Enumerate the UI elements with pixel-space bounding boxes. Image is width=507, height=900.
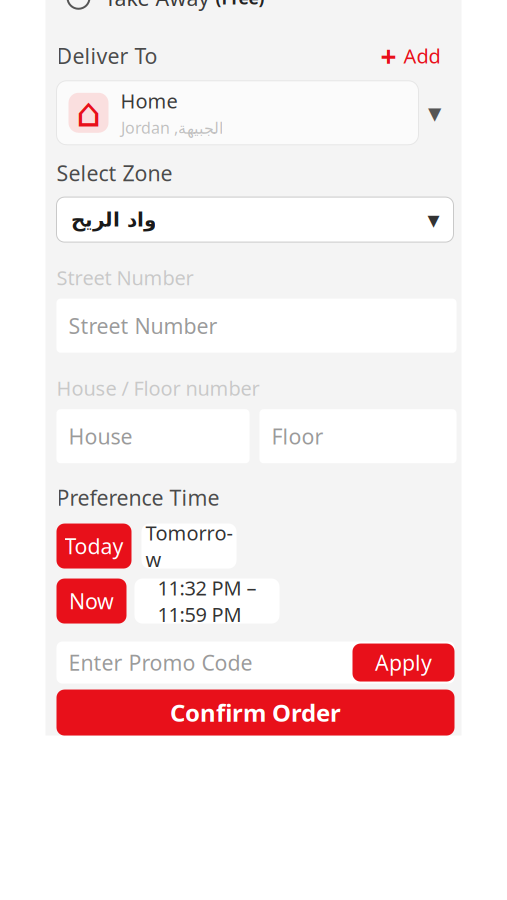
staticText: Enter Promo Code xyxy=(68,648,252,677)
staticText: Apply xyxy=(375,648,432,677)
staticText: Select Zone xyxy=(56,159,172,187)
button[interactable]: Take Away xyxy=(56,0,450,15)
staticText: ⌂ xyxy=(76,90,101,135)
staticText: Tomorrow xyxy=(145,519,232,573)
button[interactable]: واد الريح xyxy=(56,197,453,242)
button[interactable]: Apply xyxy=(352,644,454,682)
button[interactable]: Confirm Order xyxy=(56,690,454,736)
button[interactable]: Street Number xyxy=(56,299,456,353)
staticText: House / Floor number xyxy=(56,375,259,401)
staticText: Add xyxy=(403,42,440,69)
staticText: Take Away xyxy=(104,0,209,12)
staticText: Home xyxy=(120,87,177,114)
button[interactable]: ⌂ xyxy=(56,81,418,145)
staticText: 11:32 PM – 11:59 PM xyxy=(157,574,256,628)
staticText: Street Number xyxy=(68,311,217,340)
button[interactable]: Today xyxy=(56,524,131,569)
staticText: Preference Time xyxy=(56,483,219,511)
staticText: House xyxy=(68,422,132,450)
button[interactable]: House xyxy=(56,409,249,463)
staticText: Confirm Order xyxy=(170,697,341,728)
staticText: (Free) xyxy=(215,0,264,9)
staticText: + xyxy=(380,37,396,74)
staticText: Street Number xyxy=(56,264,193,291)
button[interactable]: Tomorrow xyxy=(141,524,236,569)
staticText: Today xyxy=(64,532,123,560)
button[interactable]: Choose address xyxy=(418,93,450,133)
staticText: ▾ xyxy=(427,206,439,233)
button[interactable]: Now xyxy=(56,579,126,624)
staticText: Deliver To xyxy=(56,42,157,70)
staticText: Now xyxy=(69,587,114,615)
staticText: Floor xyxy=(271,422,323,450)
button[interactable]: + xyxy=(380,41,440,71)
button[interactable]: Floor xyxy=(259,409,456,463)
button[interactable]: Enter Promo Code xyxy=(56,642,454,684)
staticText: واد الريح xyxy=(70,208,155,231)
button[interactable]: 11:32 PM – 11:59 PM xyxy=(134,579,279,624)
staticText: ▾ xyxy=(428,98,441,128)
staticText: الجبيهة, Jordan xyxy=(120,117,222,138)
